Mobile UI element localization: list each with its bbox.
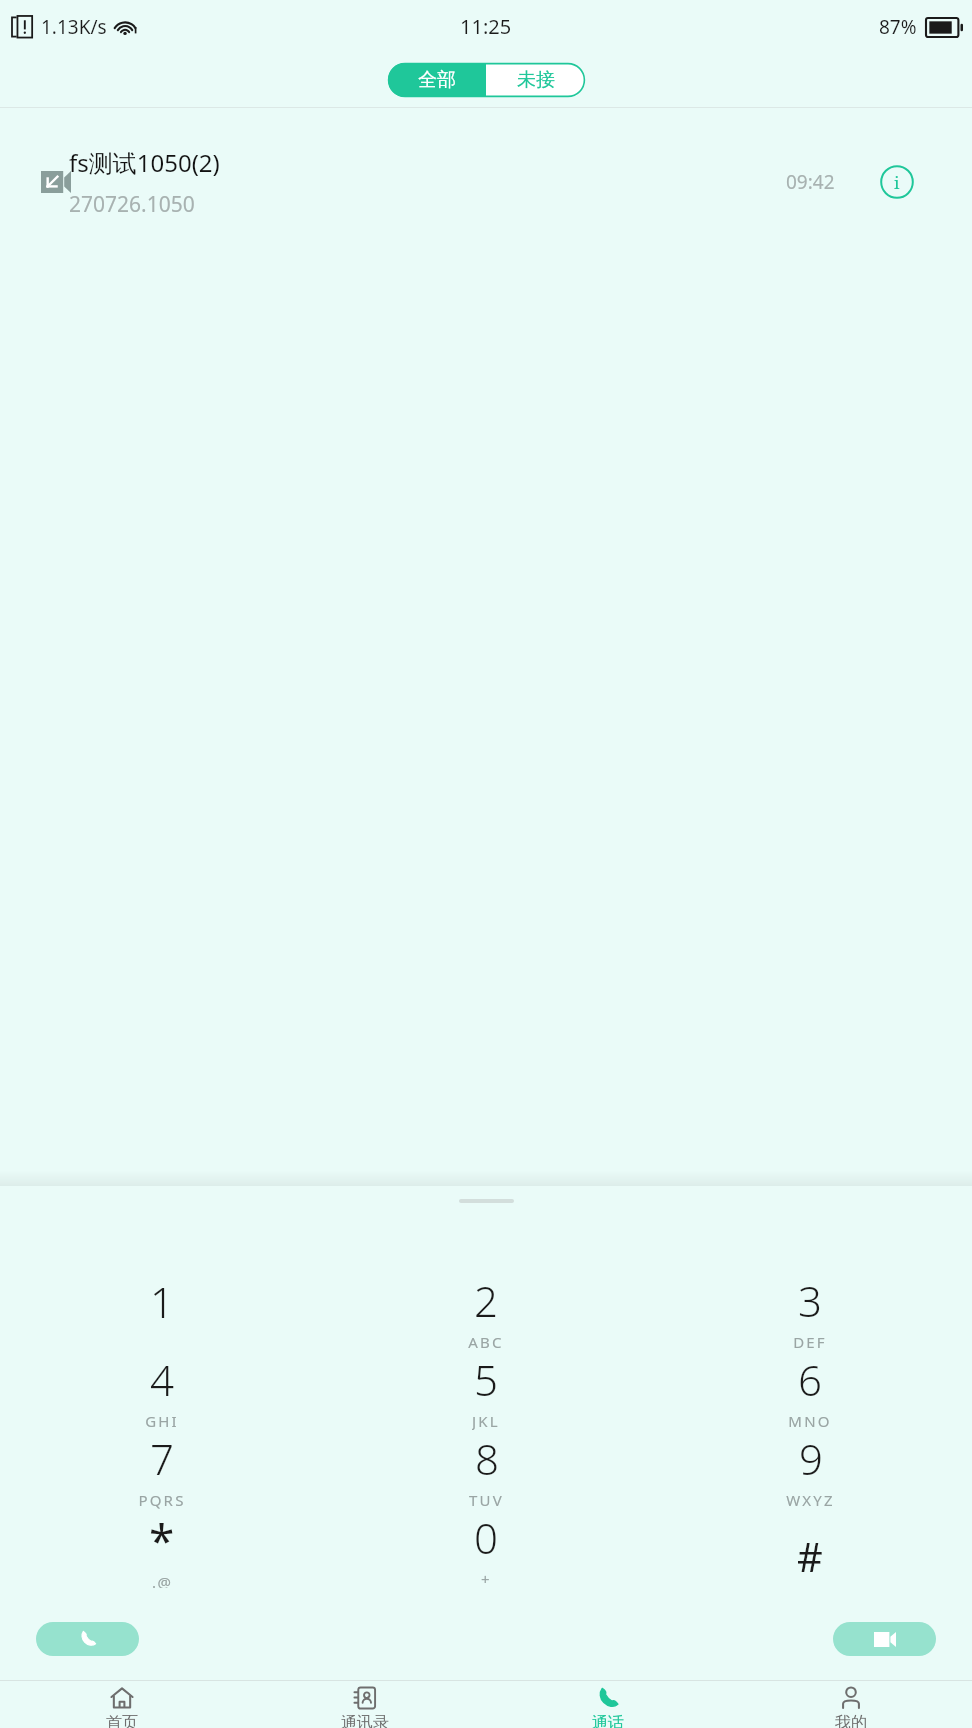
button[interactable]: 2 bbox=[324, 1272, 648, 1351]
staticText: * bbox=[149, 1509, 175, 1572]
staticText: TUV bbox=[469, 1490, 504, 1509]
staticText: 通话 bbox=[592, 1713, 624, 1728]
staticText: fs测试1050(2) bbox=[69, 146, 220, 179]
staticText: 9 bbox=[799, 1430, 823, 1487]
staticText: JKL bbox=[472, 1411, 500, 1430]
staticText: DEF bbox=[793, 1332, 827, 1351]
staticText: 0 bbox=[474, 1509, 498, 1566]
staticText: .@ bbox=[152, 1572, 173, 1588]
button[interactable]: 6 bbox=[648, 1351, 972, 1430]
staticText: 6 bbox=[798, 1351, 822, 1408]
button[interactable]: 首页 bbox=[0, 1681, 243, 1728]
staticText: # bbox=[797, 1529, 823, 1583]
button[interactable]: 视频通话 bbox=[833, 1622, 936, 1656]
staticText: GHI bbox=[145, 1411, 179, 1430]
button[interactable]: fs测试1050(2) bbox=[0, 108, 972, 256]
staticText: PQRS bbox=[138, 1490, 186, 1509]
button[interactable]: * bbox=[0, 1509, 324, 1588]
staticText: ABC bbox=[468, 1332, 504, 1351]
staticText: WXYZ bbox=[786, 1490, 835, 1509]
staticText: 首页 bbox=[106, 1713, 138, 1728]
button[interactable]: 通话 bbox=[486, 1681, 729, 1728]
staticText: 8 bbox=[475, 1430, 499, 1487]
staticText: 270726.1050 bbox=[69, 190, 195, 219]
staticText: 1 bbox=[150, 1273, 174, 1330]
staticText: i bbox=[894, 171, 900, 194]
staticText: 7 bbox=[150, 1430, 174, 1487]
staticText: 09:42 bbox=[786, 169, 835, 195]
staticText: 5 bbox=[474, 1351, 498, 1408]
staticText: 通讯录 bbox=[341, 1713, 389, 1728]
staticText: 全部 bbox=[418, 68, 456, 92]
staticText: 2 bbox=[474, 1272, 498, 1329]
button[interactable]: 8 bbox=[324, 1430, 648, 1509]
button[interactable]: 未接 bbox=[486, 63, 585, 97]
staticText: 87% bbox=[879, 14, 917, 40]
button[interactable]: # bbox=[648, 1509, 972, 1588]
button[interactable]: 我的 bbox=[729, 1681, 972, 1728]
staticText: 11:25 bbox=[460, 13, 512, 40]
staticText: + bbox=[481, 1569, 492, 1588]
button[interactable]: 通讯录 bbox=[243, 1681, 486, 1728]
button[interactable]: 4 bbox=[0, 1351, 324, 1430]
button[interactable]: 7 bbox=[0, 1430, 324, 1509]
button[interactable]: 9 bbox=[648, 1430, 972, 1509]
staticText: 未接 bbox=[517, 68, 555, 92]
button[interactable]: 5 bbox=[324, 1351, 648, 1430]
button[interactable]: 全部 bbox=[388, 63, 486, 97]
button[interactable]: 1 bbox=[0, 1272, 324, 1351]
staticText: 3 bbox=[798, 1272, 822, 1329]
button[interactable]: 详情 bbox=[878, 163, 916, 201]
button[interactable]: 3 bbox=[648, 1272, 972, 1351]
staticText: MNO bbox=[788, 1411, 832, 1430]
staticText: 我的 bbox=[835, 1713, 867, 1728]
button[interactable]: 0 bbox=[324, 1509, 648, 1588]
staticText: 1.13K/s bbox=[41, 14, 107, 40]
staticText: 4 bbox=[150, 1351, 174, 1408]
button[interactable]: 拨打电话 bbox=[36, 1622, 139, 1656]
